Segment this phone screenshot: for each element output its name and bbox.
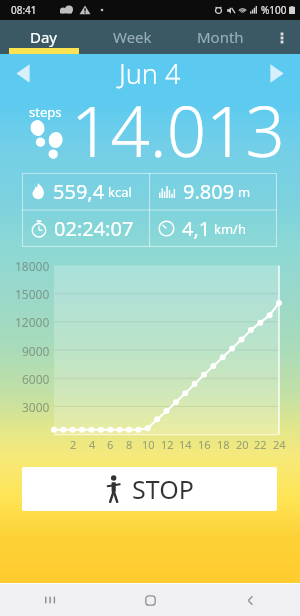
button[interactable]: 559,4 <box>22 173 149 210</box>
staticText: 16 <box>198 437 211 452</box>
button[interactable]: Week <box>88 20 176 54</box>
staticText: 08:41 <box>11 3 37 17</box>
staticText: 20 <box>236 437 249 452</box>
button[interactable]: Day <box>0 20 88 54</box>
button[interactable]: STOP <box>22 467 277 511</box>
staticText: Jun 4 <box>119 55 181 92</box>
button[interactable]: Recents <box>0 584 100 616</box>
staticText: 4,1 <box>182 215 211 242</box>
staticText: Month <box>197 27 244 47</box>
staticText: 6 <box>107 437 114 452</box>
staticText: 9000 <box>22 343 50 358</box>
staticText: 14.013 <box>71 83 285 177</box>
button[interactable]: 02:24:07 <box>22 210 149 247</box>
staticText: 15000 <box>15 286 50 301</box>
staticText: 18000 <box>15 258 50 273</box>
staticText: 6000 <box>22 371 50 386</box>
button[interactable]: 4,1 <box>149 210 277 247</box>
staticText: 02:24:07 <box>54 215 134 242</box>
button[interactable]: 9.809 <box>149 173 277 210</box>
staticText: 14 <box>179 437 192 452</box>
button[interactable]: Next day <box>262 59 291 88</box>
button[interactable]: Previous day <box>9 59 38 88</box>
button[interactable]: Home <box>100 584 200 616</box>
staticText: 9.809 <box>183 178 235 205</box>
staticText: 559,4 <box>53 178 105 205</box>
staticText: km/h <box>214 220 246 238</box>
staticText: 18 <box>217 437 230 452</box>
staticText: kcal <box>108 183 132 201</box>
staticText: 10 <box>142 437 155 452</box>
staticText: 2 <box>70 437 77 452</box>
staticText: Day <box>30 27 58 47</box>
button[interactable]: More options <box>264 20 300 54</box>
staticText: STOP <box>132 472 194 506</box>
staticText: m <box>238 183 251 201</box>
staticText: 22 <box>254 437 267 452</box>
staticText: 24 <box>273 437 286 452</box>
staticText: %100 <box>261 3 287 17</box>
staticText: 8 <box>126 437 133 452</box>
staticText: 12 <box>161 437 174 452</box>
staticText: Week <box>113 27 152 47</box>
staticText: 3000 <box>22 399 50 414</box>
button[interactable]: Month <box>176 20 264 54</box>
button[interactable]: Back <box>200 584 300 616</box>
staticText: steps <box>29 103 62 121</box>
staticText: 12000 <box>15 314 50 329</box>
staticText: 4 <box>89 437 96 452</box>
